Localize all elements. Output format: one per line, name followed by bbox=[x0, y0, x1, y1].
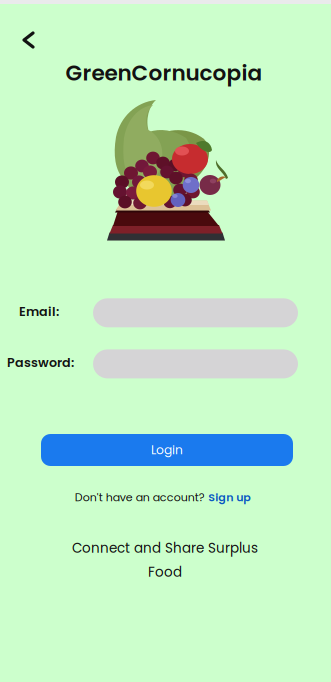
button[interactable]: Back bbox=[13, 22, 44, 58]
button[interactable]: Login bbox=[41, 434, 293, 466]
staticText: Food bbox=[148, 562, 182, 581]
staticText: Don't have an account? bbox=[75, 490, 205, 505]
staticText: Sign up bbox=[208, 490, 251, 505]
button[interactable]: Sign up bbox=[208, 490, 251, 505]
staticText: Password: bbox=[7, 354, 74, 371]
staticText: GreenCornucopia bbox=[65, 58, 262, 88]
staticText: Connect and Share Surplus bbox=[72, 539, 258, 557]
staticText: Email: bbox=[19, 303, 59, 320]
staticText: Login bbox=[151, 441, 183, 459]
